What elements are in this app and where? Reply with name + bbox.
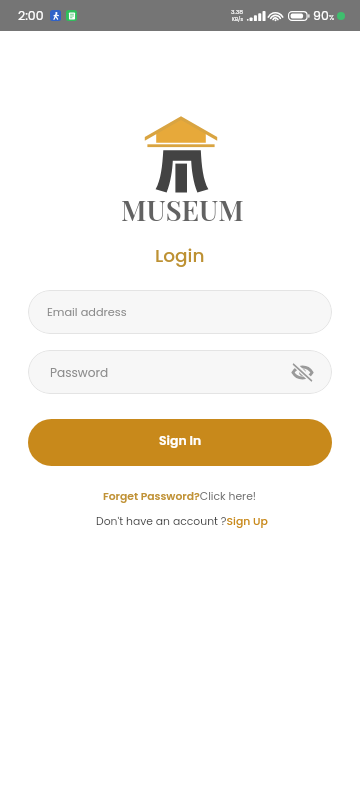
button[interactable]: Forget Password?Click here!: [103, 489, 257, 504]
staticText: 2:00: [18, 7, 44, 24]
staticText: KB/s: [232, 16, 244, 23]
button[interactable]: Show password: [290, 360, 314, 384]
button[interactable]: Email address: [28, 290, 332, 334]
staticText: Don't have an account ?Sign Up: [96, 514, 268, 529]
staticText: Password: [50, 364, 109, 381]
button[interactable]: Password: [28, 350, 332, 394]
staticText: Email address: [47, 304, 127, 320]
staticText: %: [329, 13, 335, 23]
staticText: 3.38: [231, 8, 244, 16]
button[interactable]: Sign In: [28, 419, 332, 466]
staticText: MUSEUM: [121, 191, 244, 228]
staticText: Forget Password?Click here!: [103, 489, 257, 504]
staticText: 90: [313, 7, 329, 24]
button[interactable]: Don't have an account ?Sign Up: [96, 514, 268, 529]
staticText: Sign In: [159, 432, 202, 449]
staticText: Login: [155, 243, 205, 269]
